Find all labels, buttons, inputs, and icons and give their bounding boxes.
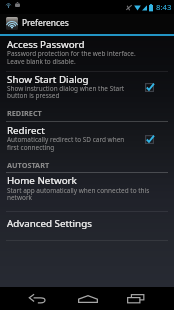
button[interactable]: Redirect bbox=[0, 122, 174, 156]
staticText: Advanced Settings bbox=[7, 217, 92, 230]
staticText: first connecting bbox=[7, 143, 55, 152]
staticText: Start app automatically when connected t… bbox=[7, 186, 150, 195]
button[interactable]: Back bbox=[18, 287, 57, 310]
staticText: Access Password bbox=[7, 38, 85, 51]
staticText: Password protection for the web interfac… bbox=[7, 49, 136, 58]
staticText: AUTOSTART bbox=[7, 160, 50, 170]
staticText: 8:43 bbox=[156, 2, 172, 13]
button[interactable]: Advanced Settings bbox=[0, 212, 174, 240]
button[interactable]: Access Password bbox=[0, 36, 174, 71]
staticText: Show Start Dialog bbox=[7, 73, 89, 86]
button[interactable]: Home Network bbox=[0, 173, 174, 211]
staticText: Preferences bbox=[22, 17, 69, 28]
button[interactable]: Preferences bbox=[0, 14, 174, 34]
staticText: button is pressed bbox=[7, 91, 60, 100]
button[interactable]: Recent apps bbox=[116, 287, 155, 310]
button[interactable]: Home bbox=[68, 287, 107, 310]
staticText: Redirect bbox=[7, 124, 45, 137]
staticText: Automatically redirect to SD card when bbox=[7, 135, 125, 144]
staticText: Leave blank to disable. bbox=[7, 57, 76, 66]
button[interactable]: Show Start Dialog bbox=[0, 72, 174, 103]
staticText: Home Network bbox=[7, 174, 77, 187]
staticText: Show instruction dialog when the Start bbox=[7, 84, 125, 93]
staticText: network bbox=[7, 193, 32, 202]
staticText: REDIRECT bbox=[7, 108, 42, 118]
